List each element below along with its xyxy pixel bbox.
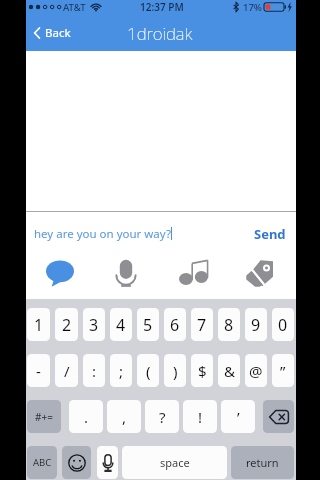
button[interactable]: ): [164, 354, 186, 387]
staticText: -: [36, 361, 41, 381]
button[interactable]: 9: [245, 308, 267, 341]
button[interactable]: Emoji: [62, 446, 91, 479]
button[interactable]: 8: [218, 308, 240, 341]
staticText: ;: [119, 361, 124, 381]
button[interactable]: 0: [272, 308, 294, 341]
button[interactable]: /: [55, 354, 78, 387]
staticText: #+=: [35, 410, 53, 424]
button[interactable]: !: [183, 400, 217, 433]
button[interactable]: $: [191, 354, 213, 387]
button[interactable]: 5: [137, 308, 159, 341]
button[interactable]: space: [122, 446, 227, 479]
button[interactable]: 7: [191, 308, 213, 341]
button[interactable]: -: [27, 354, 50, 387]
button[interactable]: ;: [110, 354, 132, 387]
staticText: 9: [251, 314, 261, 336]
staticText: !: [198, 407, 203, 427]
button[interactable]: 1: [27, 308, 50, 341]
staticText: .: [84, 407, 89, 427]
button[interactable]: Tag: [238, 255, 280, 299]
staticText: ”: [280, 361, 286, 381]
staticText: @: [249, 361, 263, 381]
button[interactable]: 3: [83, 308, 105, 341]
staticText: hey are you on your way?: [34, 226, 171, 242]
staticText: 17%: [243, 1, 262, 14]
staticText: ,: [122, 407, 127, 427]
button[interactable]: Backspace: [263, 400, 294, 433]
staticText: 2: [62, 314, 72, 336]
staticText: 1: [34, 314, 44, 336]
button[interactable]: return: [231, 446, 294, 479]
staticText: 4: [116, 314, 126, 336]
staticText: Back: [45, 25, 71, 41]
staticText: 3: [89, 314, 99, 336]
staticText: ABC: [33, 456, 52, 469]
button[interactable]: (: [137, 354, 159, 387]
staticText: :: [92, 361, 97, 381]
staticText: Send: [254, 225, 286, 243]
staticText: 5: [143, 314, 153, 336]
staticText: ): [173, 361, 178, 381]
button[interactable]: 2: [55, 308, 78, 341]
staticText: $: [198, 361, 207, 381]
staticText: 7: [197, 314, 207, 336]
staticText: space: [160, 455, 190, 470]
staticText: ?: [159, 407, 166, 427]
button[interactable]: ’: [221, 400, 255, 433]
staticText: /: [64, 361, 70, 381]
button[interactable]: Music: [172, 255, 214, 299]
button[interactable]: ?: [145, 400, 179, 433]
button[interactable]: ”: [272, 354, 294, 387]
button[interactable]: :: [83, 354, 105, 387]
button[interactable]: Back: [26, 18, 77, 48]
button[interactable]: 4: [110, 308, 132, 341]
button[interactable]: ,: [107, 400, 141, 433]
staticText: 6: [170, 314, 180, 336]
staticText: return: [246, 455, 279, 470]
staticText: &: [224, 361, 235, 381]
button[interactable]: Voice message: [105, 255, 147, 299]
button[interactable]: Send: [254, 220, 286, 248]
button[interactable]: 6: [164, 308, 186, 341]
button[interactable]: .: [69, 400, 103, 433]
button[interactable]: @: [245, 354, 267, 387]
staticText: AT&T: [63, 1, 86, 14]
staticText: 1droidak: [127, 22, 193, 45]
button[interactable]: &: [218, 354, 240, 387]
staticText: ’: [237, 407, 240, 427]
staticText: (: [146, 361, 151, 381]
staticText: 12:37 PM: [140, 0, 184, 14]
button[interactable]: Dictation: [97, 446, 118, 479]
button[interactable]: #+=: [27, 400, 61, 433]
staticText: 0: [278, 314, 288, 336]
button[interactable]: ABC: [27, 446, 57, 479]
staticText: 8: [224, 314, 234, 336]
other: Back: [33, 27, 41, 39]
button[interactable]: Message: [39, 255, 81, 299]
